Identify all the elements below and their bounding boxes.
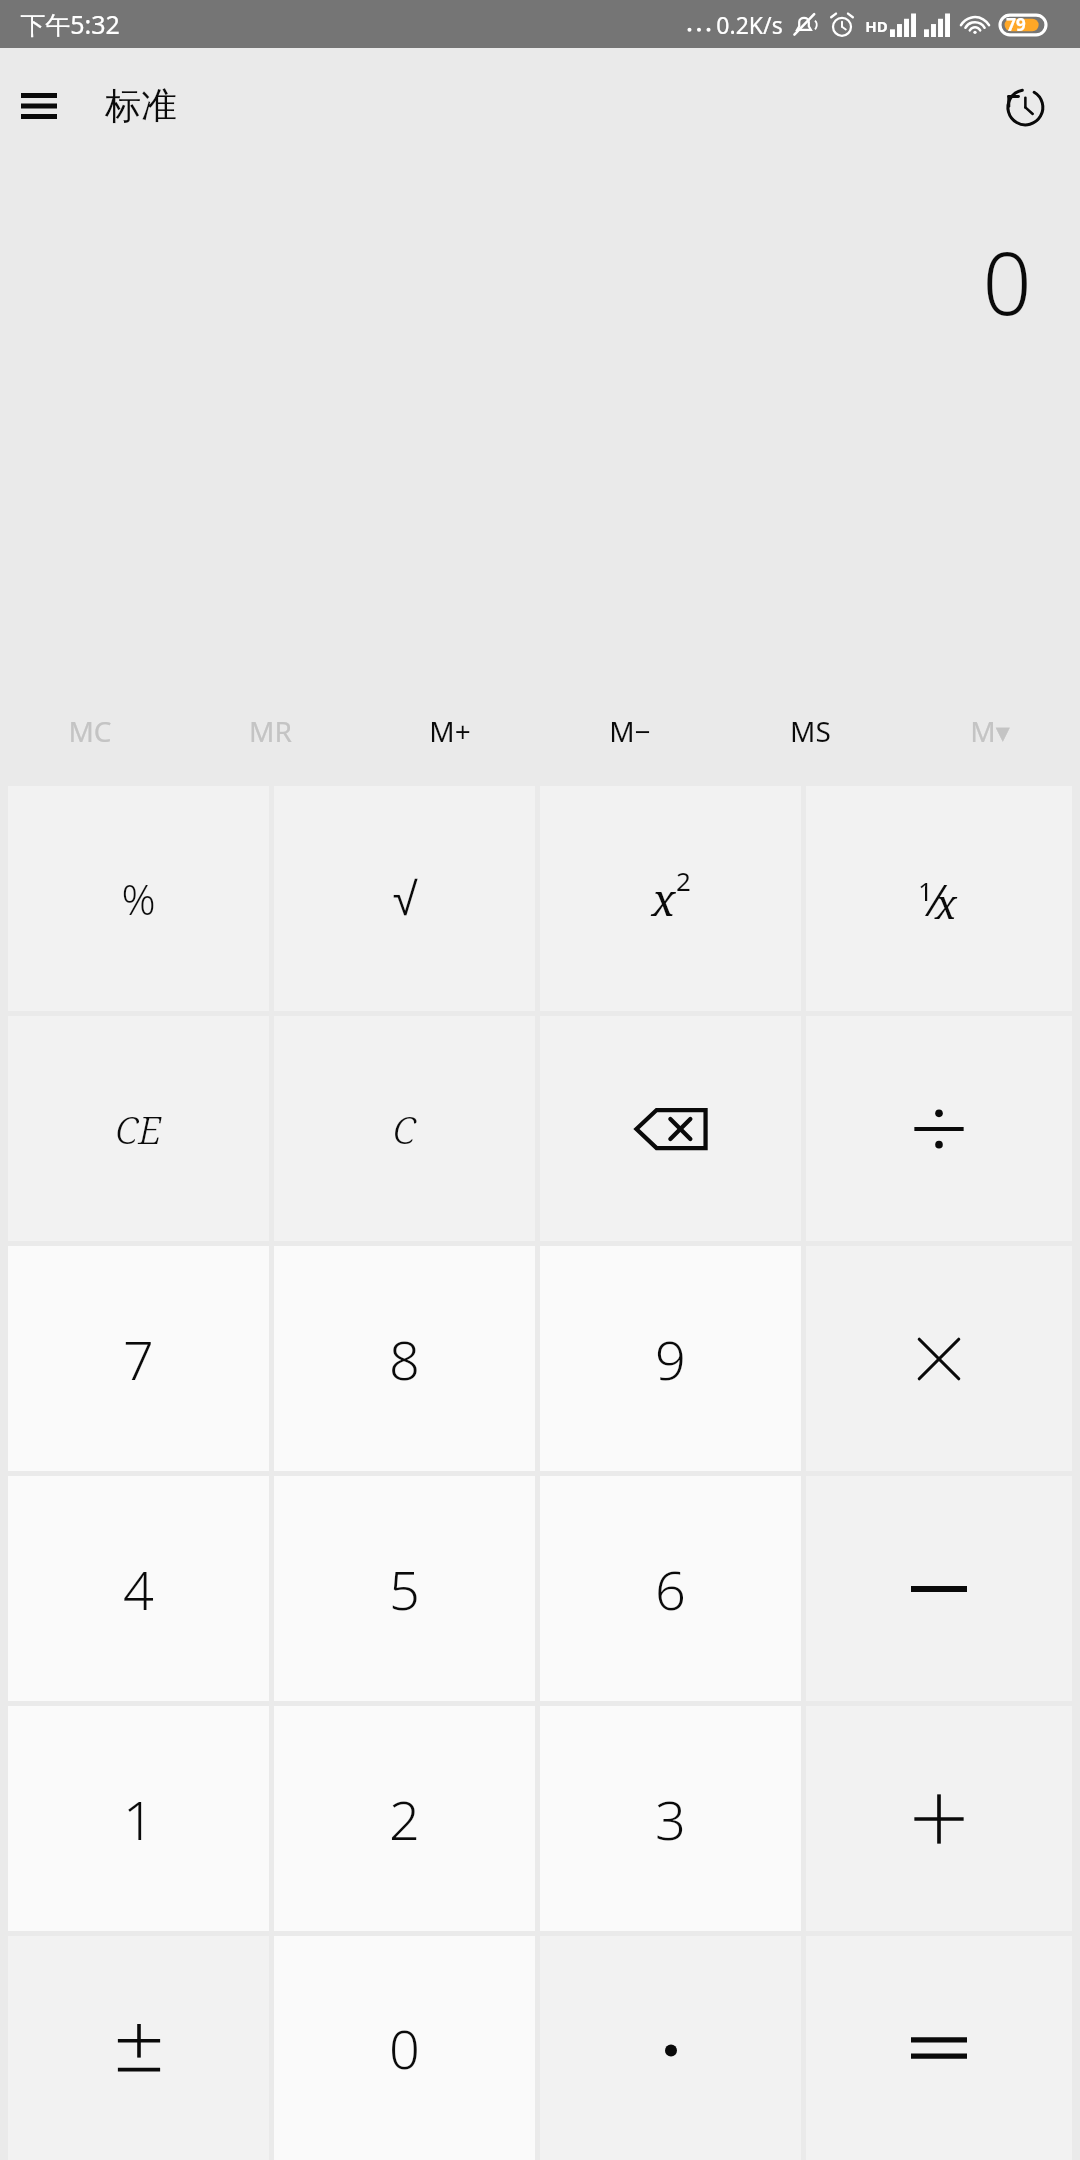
button[interactable]: Multiply [806, 1246, 1072, 1471]
button[interactable]: Decimal point [540, 1936, 801, 2160]
button[interactable]: M+ [360, 683, 540, 779]
button[interactable]: M− [540, 683, 720, 779]
button[interactable]: Menu [8, 75, 70, 137]
button[interactable]: 4 [8, 1476, 269, 1701]
button[interactable]: x [540, 786, 801, 1011]
button[interactable]: Plus minus [8, 1936, 269, 2160]
button[interactable]: 3 [540, 1706, 801, 1931]
staticText: HD [865, 16, 888, 36]
staticText: M+ [429, 712, 471, 750]
button[interactable]: Equals [806, 1936, 1072, 2160]
staticText: MR [249, 712, 292, 750]
staticText: % [121, 870, 156, 927]
button[interactable]: 2 [274, 1706, 535, 1931]
staticText: 1 [918, 873, 933, 908]
button[interactable]: Add [806, 1706, 1072, 1931]
staticText: 3 [655, 1782, 686, 1856]
staticText: 7 [123, 1322, 154, 1396]
staticText: M− [609, 712, 651, 750]
button[interactable]: 7 [8, 1246, 269, 1471]
button[interactable]: M▾ [900, 683, 1080, 779]
staticText: 8 [389, 1322, 420, 1396]
staticText: MC [68, 712, 112, 750]
staticText: MS [790, 712, 831, 750]
button[interactable]: √ [274, 786, 535, 1011]
staticText: ⁄ [933, 869, 939, 929]
staticText: 6 [655, 1552, 686, 1626]
staticText: 0 [982, 223, 1032, 340]
button[interactable]: Divide [806, 1016, 1072, 1241]
staticText: 4 [123, 1552, 154, 1626]
staticText: 下午5:32 [20, 7, 120, 41]
button[interactable]: Subtract [806, 1476, 1072, 1701]
staticText: 79 [1006, 13, 1026, 36]
button[interactable]: 9 [540, 1246, 801, 1471]
button[interactable]: CE [8, 1016, 269, 1241]
staticText: x [651, 869, 676, 929]
staticText: CE [115, 1103, 162, 1155]
button[interactable]: 0 [274, 1936, 535, 2160]
staticText: 标准 [105, 83, 177, 128]
staticText: x [935, 876, 957, 930]
button[interactable]: % [8, 786, 269, 1011]
staticText: 5 [389, 1552, 420, 1626]
staticText: √ [392, 873, 418, 924]
button[interactable]: Backspace [540, 1016, 801, 1241]
button[interactable]: 1 [8, 1706, 269, 1931]
staticText: 0 [389, 2011, 420, 2085]
staticText: 0.2K/s [716, 9, 783, 40]
button[interactable]: 6 [540, 1476, 801, 1701]
staticText: 2 [676, 863, 691, 898]
button[interactable]: 5 [274, 1476, 535, 1701]
button[interactable]: 1 [806, 786, 1072, 1011]
button[interactable]: C [274, 1016, 535, 1241]
button[interactable]: MR [180, 683, 360, 779]
staticText: M▾ [970, 712, 1010, 750]
button[interactable]: MC [0, 683, 180, 779]
staticText: 1 [123, 1782, 154, 1856]
button[interactable]: MS [720, 683, 900, 779]
button[interactable]: History [990, 72, 1058, 140]
staticText: C [393, 1103, 416, 1155]
staticText: 9 [655, 1322, 686, 1396]
button[interactable]: 8 [274, 1246, 535, 1471]
staticText: 2 [389, 1782, 420, 1856]
